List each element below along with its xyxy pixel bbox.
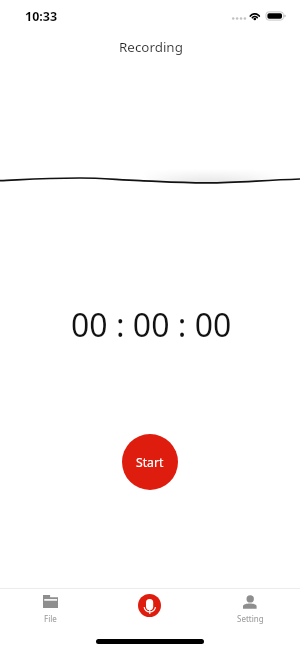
staticText: 10:33 xyxy=(25,8,58,25)
staticText: File xyxy=(44,613,57,624)
staticText: Setting xyxy=(237,613,264,624)
button[interactable]: File xyxy=(0,589,100,649)
staticText: 00 : 00 : 00 xyxy=(71,303,232,347)
button[interactable]: Setting xyxy=(200,589,300,649)
staticText: Start xyxy=(136,454,164,471)
staticText: Recording xyxy=(119,38,183,56)
button[interactable]: Start xyxy=(122,434,178,490)
button[interactable]: Record xyxy=(138,594,161,617)
